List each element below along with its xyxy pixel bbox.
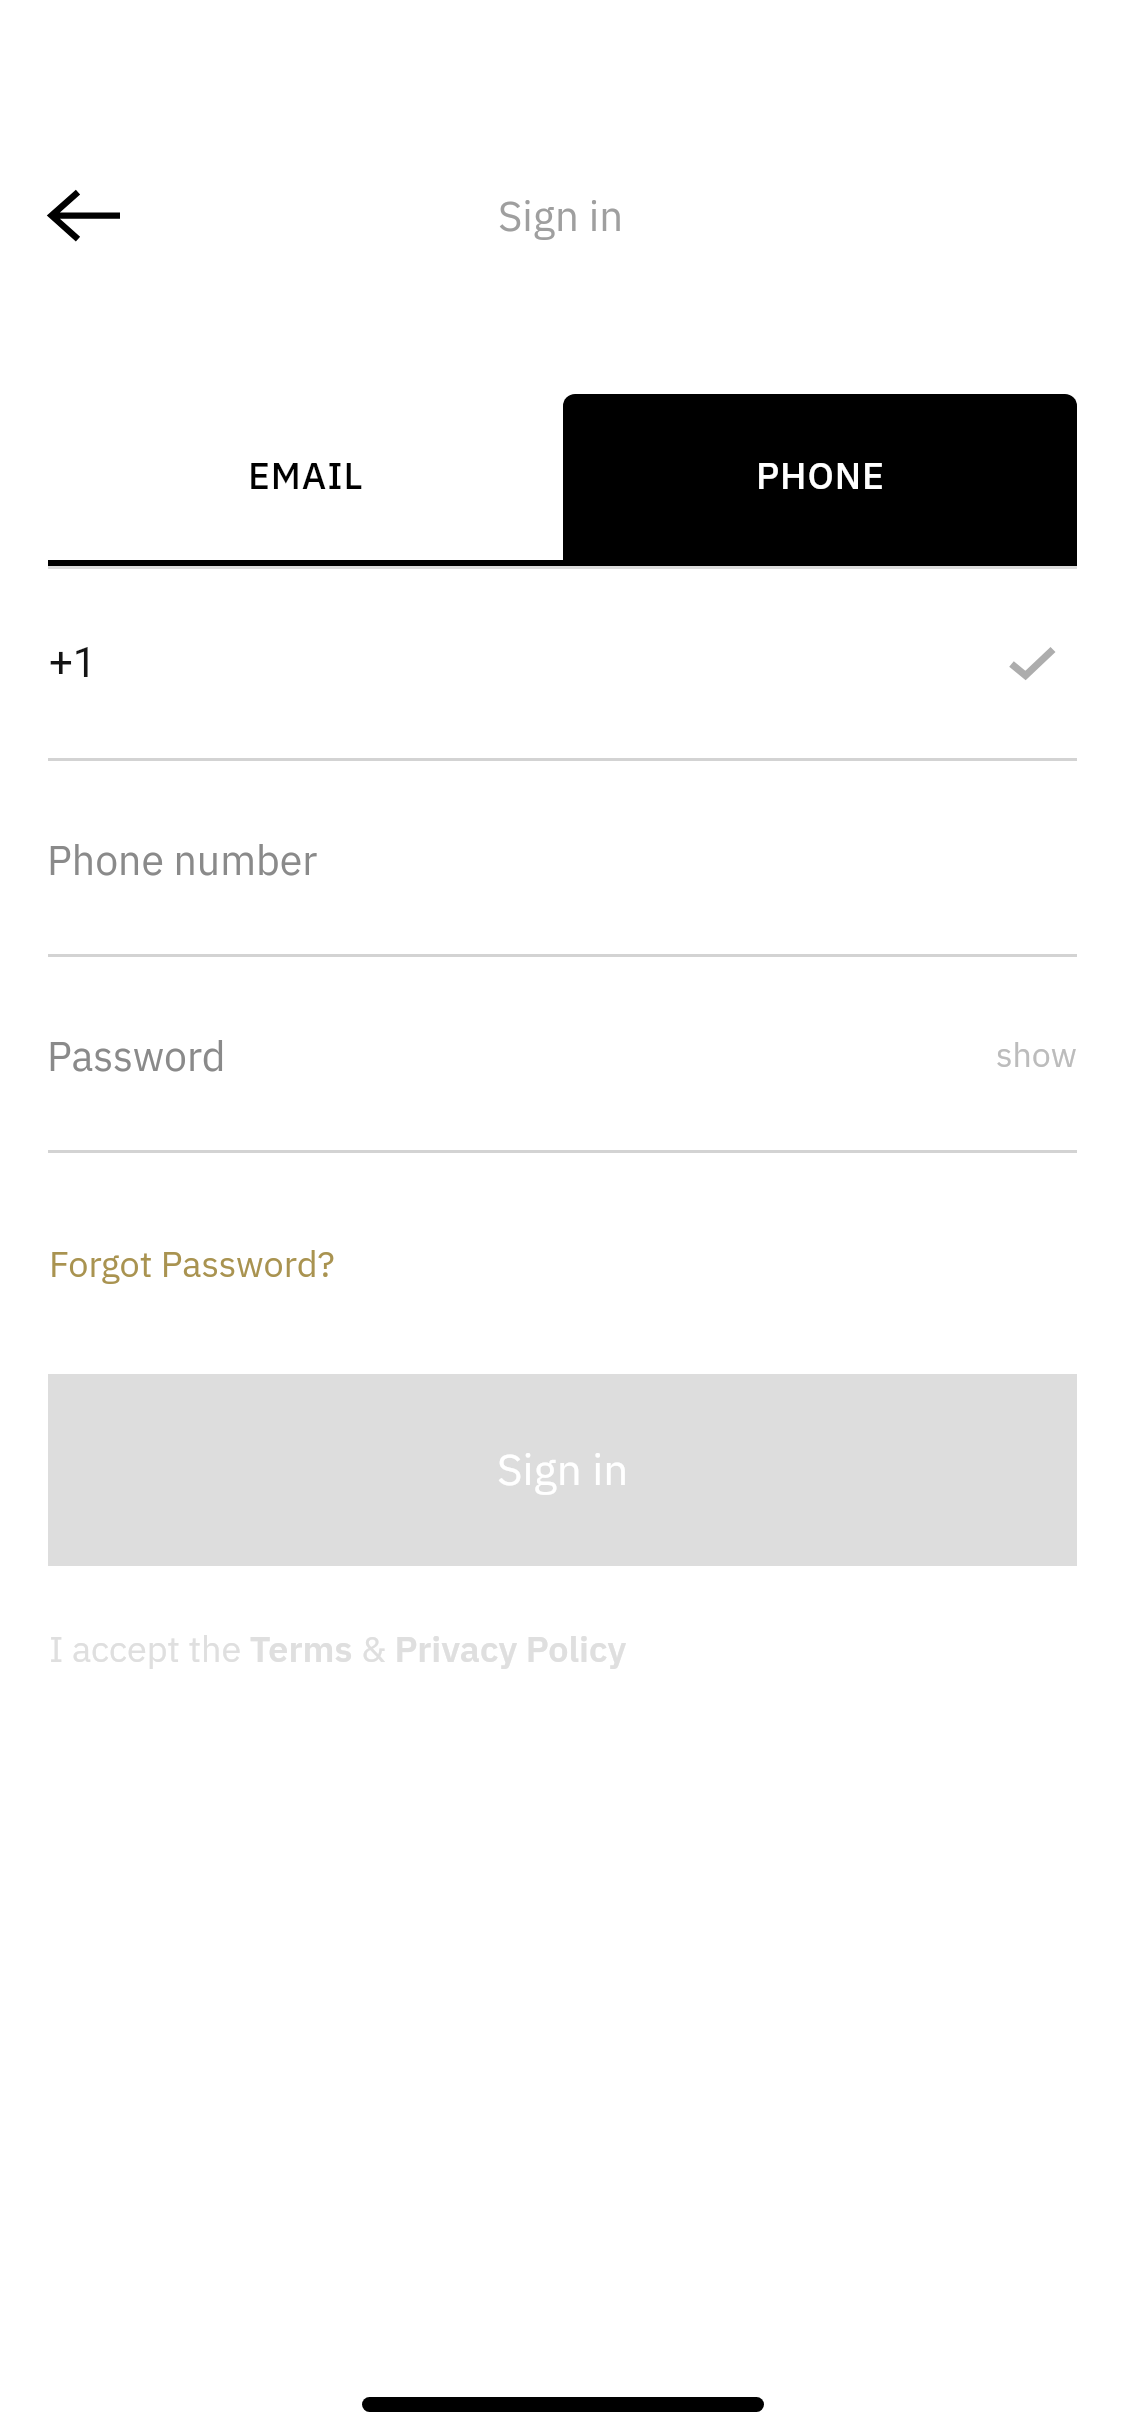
button[interactable]: EMAIL: [48, 394, 563, 560]
staticText: Sign in: [0, 188, 1123, 243]
button[interactable]: Country code confirmed: [990, 625, 1078, 705]
staticText: EMAIL: [248, 449, 364, 505]
staticText: Forgot Password?: [49, 1240, 335, 1287]
staticText: +1: [49, 638, 97, 687]
button[interactable]: PHONE: [563, 394, 1077, 566]
button[interactable]: I accept the Terms & Privacy Policy: [48, 1623, 626, 1677]
button[interactable]: Forgot Password?: [48, 1234, 334, 1281]
staticText: show: [996, 1032, 1077, 1076]
staticText: Sign in: [497, 1440, 629, 1497]
button[interactable]: show: [947, 1018, 1077, 1090]
staticText: Phone number: [47, 833, 318, 886]
staticText: Password: [47, 1029, 226, 1082]
staticText: PHONE: [756, 449, 885, 505]
staticText: I accept the Terms & Privacy Policy: [49, 1623, 627, 1677]
button[interactable]: Back: [0, 148, 168, 284]
